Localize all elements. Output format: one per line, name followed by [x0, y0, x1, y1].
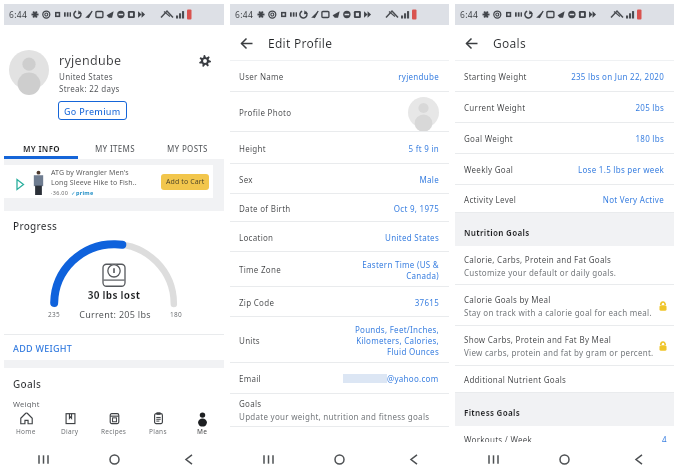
button[interactable]: Zip Code	[230, 287, 449, 317]
button[interactable]: Show Carbs, Protein and Fat By Meal	[455, 326, 674, 366]
button[interactable]: Home	[78, 442, 151, 476]
staticText: ATG by Wrangler Men's	[51, 168, 129, 178]
staticText: Goals	[239, 398, 262, 409]
button[interactable]: Time Zone	[230, 252, 449, 287]
button[interactable]: Weekly Goal	[455, 154, 674, 185]
button[interactable]: Me	[180, 408, 224, 442]
button[interactable]: Activity Level	[455, 185, 674, 213]
button[interactable]: Goal Weight	[455, 123, 674, 154]
staticText: Diary	[61, 427, 79, 436]
staticText: Show Carbs, Protein and Fat By Meal	[464, 334, 612, 345]
staticText: Plans	[149, 427, 167, 436]
staticText: 235 lbs on Jun 22, 2020	[571, 71, 664, 82]
staticText: Weight	[13, 399, 40, 409]
staticText: 205 lbs	[635, 102, 664, 113]
button[interactable]: Recents	[230, 442, 303, 476]
staticText: ·36.00	[51, 189, 69, 196]
button[interactable]: Recipes	[92, 408, 136, 442]
staticText: ADD WEIGHT	[13, 342, 73, 354]
staticText: ryjendube	[59, 52, 122, 69]
button[interactable]: Add to Cart	[161, 174, 209, 190]
staticText: Nutrition Goals	[464, 227, 530, 238]
staticText: @yahoo.com	[387, 373, 439, 384]
staticText: Edit Profile	[268, 35, 333, 51]
staticText: 6:44	[235, 9, 254, 21]
staticText: Progress	[13, 219, 58, 233]
staticText: User Name	[239, 71, 398, 82]
button[interactable]: Calorie, Carbs, Protein and Fat Goals	[455, 246, 674, 285]
staticText: 37615	[414, 297, 439, 308]
button[interactable]: Back	[151, 442, 224, 476]
button[interactable]: Location	[230, 222, 449, 252]
staticText: Date of Birth	[239, 203, 393, 214]
staticText: Calorie Goals by Meal	[464, 294, 551, 305]
staticText: Add to Cart	[166, 177, 205, 187]
staticText: Oct 9, 1975	[393, 203, 439, 214]
button[interactable]: Home	[4, 408, 48, 442]
staticText: 180	[170, 310, 182, 319]
staticText: MY POSTS	[167, 143, 208, 154]
button[interactable]: Starting Weight	[455, 61, 674, 92]
staticText: Starting Weight	[464, 71, 571, 82]
button[interactable]: Goals	[230, 394, 449, 426]
staticText: Workouts / Week	[464, 434, 662, 445]
button[interactable]: Home	[528, 442, 601, 476]
button[interactable]: Back	[235, 32, 257, 54]
button[interactable]: Recents	[455, 442, 528, 476]
button[interactable]: Units	[230, 317, 449, 363]
staticText: Long Sleeve Hike to Fish..	[51, 178, 137, 188]
button[interactable]: Plans	[136, 408, 180, 442]
staticText: Recipes	[101, 427, 127, 436]
staticText: Height	[239, 143, 408, 154]
button[interactable]: Workouts / Week	[455, 426, 674, 445]
button[interactable]: MY POSTS	[151, 138, 224, 159]
button[interactable]: Additional Nutrient Goals	[455, 366, 674, 393]
staticText: Streak: 22 days	[59, 83, 120, 94]
staticText: Calorie, Carbs, Protein and Fat Goals	[464, 254, 612, 265]
button[interactable]: Settings	[194, 50, 216, 72]
button[interactable]: ADD WEIGHT	[4, 335, 224, 360]
staticText: Location	[239, 232, 385, 243]
button[interactable]: Date of Birth	[230, 194, 449, 222]
staticText: ✓prime	[71, 189, 94, 196]
staticText: Lose 1.5 lbs per week	[577, 164, 664, 175]
button[interactable]: Go Premium	[58, 101, 127, 120]
staticText: Activity Level	[464, 194, 602, 205]
staticText: Customize your default or daily goals.	[464, 267, 617, 278]
button[interactable]: Diary	[48, 408, 92, 442]
button[interactable]: Back	[460, 32, 482, 54]
button[interactable]: Home	[303, 442, 376, 476]
staticText: Home	[16, 427, 36, 436]
staticText: Zip Code	[239, 297, 414, 308]
button[interactable]: Back	[601, 442, 674, 476]
staticText: Go Premium	[64, 105, 121, 117]
button[interactable]: Sex	[230, 164, 449, 194]
staticText: 235	[48, 310, 60, 319]
staticText: Email	[239, 373, 343, 384]
staticText: Current: 205 lbs	[60, 308, 170, 320]
button[interactable]: MY INFO	[4, 138, 78, 159]
staticText: United States	[385, 232, 439, 243]
staticText: Male	[419, 174, 439, 185]
button[interactable]: User Name	[230, 61, 449, 92]
staticText: Update your weight, nutrition and fitnes…	[239, 411, 430, 422]
button[interactable]: Back	[376, 442, 449, 476]
staticText: 4	[662, 434, 667, 445]
staticText: Additional Nutrient Goals	[464, 374, 567, 385]
button[interactable]: Current Weight	[455, 92, 674, 123]
staticText: Units	[239, 335, 336, 346]
staticText: Goals	[13, 377, 42, 391]
button[interactable]: Recents	[4, 442, 78, 476]
button[interactable]: Profile Photo	[230, 92, 449, 132]
button[interactable]: MY ITEMS	[78, 138, 151, 159]
staticText: 30 lbs lost	[4, 288, 224, 302]
staticText: Profile Photo	[239, 107, 408, 118]
button[interactable]: Height	[230, 132, 449, 164]
staticText: 180 lbs	[635, 133, 664, 144]
button[interactable]: Email	[230, 363, 449, 394]
button[interactable]: Calorie Goals by Meal	[455, 285, 674, 326]
staticText: Me	[197, 427, 208, 436]
staticText: Time Zone	[239, 264, 336, 275]
staticText: Sex	[239, 174, 419, 185]
staticText: Eastern Time (US & Canada)	[336, 259, 439, 281]
